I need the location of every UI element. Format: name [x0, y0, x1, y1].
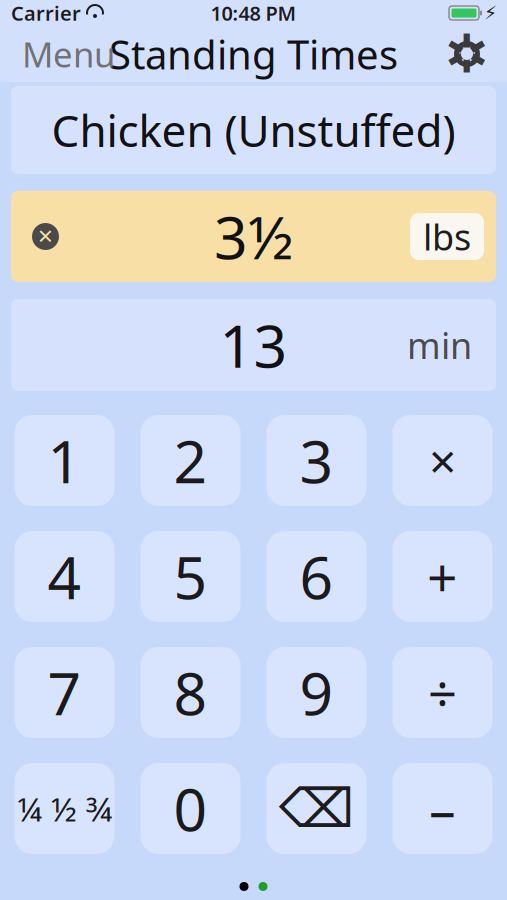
- staticText: ÷: [428, 659, 457, 726]
- staticText: 3: [299, 421, 333, 499]
- button[interactable]: 6: [266, 531, 366, 622]
- button[interactable]: Menu: [10, 23, 127, 85]
- staticText: Menu: [22, 31, 115, 77]
- staticText: 2: [173, 421, 207, 499]
- staticText: ✲: [444, 24, 489, 84]
- staticText: 10:48 PM: [210, 0, 296, 26]
- staticText: lbs: [423, 213, 471, 260]
- staticText: 1: [47, 421, 81, 499]
- staticText: min: [407, 321, 472, 369]
- staticText: Chicken (Unstuffed): [51, 101, 455, 159]
- staticText: 7: [47, 653, 81, 731]
- staticText: 8: [173, 653, 207, 731]
- staticText: ¼ ½ ¾: [17, 786, 112, 831]
- staticText: ⚡︎: [484, 2, 497, 24]
- button[interactable]: 0: [140, 763, 240, 854]
- staticText: ✕: [37, 225, 54, 248]
- button[interactable]: ¼ ½ ¾: [14, 763, 114, 854]
- staticText: Carrier: [11, 0, 81, 26]
- staticText: ×: [429, 429, 456, 492]
- button[interactable]: ÷: [392, 647, 492, 738]
- staticText: +: [427, 541, 458, 612]
- staticText: 13: [219, 306, 287, 384]
- staticText: 9: [299, 653, 333, 731]
- button[interactable]: 3: [266, 415, 366, 506]
- button[interactable]: lbs: [410, 213, 484, 260]
- button[interactable]: 9: [266, 647, 366, 738]
- button[interactable]: 2: [140, 415, 240, 506]
- staticText: 5: [173, 537, 207, 615]
- button[interactable]: +: [392, 531, 492, 622]
- button[interactable]: Settings: [439, 30, 495, 78]
- staticText: 0: [173, 769, 207, 847]
- button[interactable]: 13: [11, 299, 496, 391]
- staticText: 4: [47, 537, 81, 615]
- button[interactable]: 1: [14, 415, 114, 506]
- button[interactable]: –: [392, 763, 492, 854]
- staticText: 6: [299, 537, 333, 615]
- button[interactable]: 8: [140, 647, 240, 738]
- staticText: 3½: [214, 197, 293, 275]
- staticText: Standing Times: [109, 27, 398, 80]
- button[interactable]: Clear weight: [26, 217, 65, 256]
- button[interactable]: Chicken (Unstuffed): [11, 86, 496, 174]
- button[interactable]: Delete: [266, 763, 366, 854]
- staticText: ⌫: [279, 778, 354, 839]
- button[interactable]: 7: [14, 647, 114, 738]
- staticText: –: [429, 773, 456, 844]
- button[interactable]: 4: [14, 531, 114, 622]
- button[interactable]: ×: [392, 415, 492, 506]
- button[interactable]: 5: [140, 531, 240, 622]
